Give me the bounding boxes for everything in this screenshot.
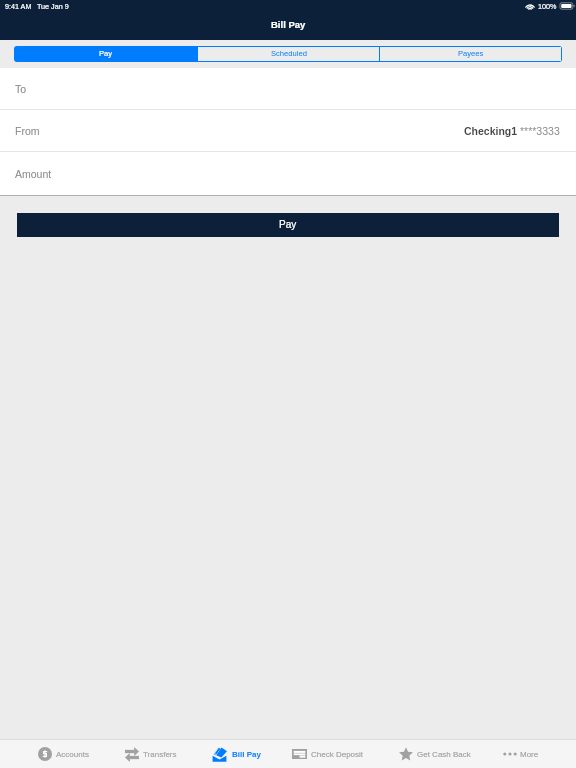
button[interactable]: Transfers <box>125 740 177 768</box>
button[interactable]: Amount <box>0 152 576 195</box>
staticText: Get Cash Back <box>417 750 471 759</box>
staticText: Payees <box>458 49 484 57</box>
staticText: Accounts <box>56 750 89 759</box>
button[interactable]: Scheduled <box>198 47 379 61</box>
staticText: Amount <box>15 168 52 180</box>
button[interactable]: Bill Pay <box>212 740 261 768</box>
staticText: Pay <box>279 219 297 230</box>
button[interactable]: Accounts <box>38 740 89 768</box>
button[interactable]: Get Cash Back <box>399 740 471 768</box>
button[interactable]: Pay <box>17 213 559 237</box>
button[interactable]: Check Deposit <box>292 740 364 768</box>
staticText: Checking1 ****3333 <box>464 125 560 137</box>
staticText: Bill Pay <box>232 750 261 759</box>
staticText: Pay <box>99 49 113 57</box>
button[interactable]: More <box>504 740 539 768</box>
button[interactable]: Pay <box>15 47 197 61</box>
staticText: From <box>15 125 40 137</box>
button[interactable]: Payees <box>380 47 561 61</box>
staticText: Transfers <box>143 750 177 759</box>
staticText: 100% <box>538 2 557 10</box>
staticText: To <box>15 83 27 95</box>
staticText: Tue Jan 9 <box>37 2 69 10</box>
staticText: More <box>520 750 539 759</box>
staticText: 9:41 AM <box>5 2 32 10</box>
button[interactable]: To <box>0 68 576 109</box>
staticText: Bill Pay <box>271 19 306 30</box>
staticText: Scheduled <box>271 49 307 57</box>
button[interactable]: From <box>0 110 576 151</box>
staticText: Check Deposit <box>311 750 364 759</box>
